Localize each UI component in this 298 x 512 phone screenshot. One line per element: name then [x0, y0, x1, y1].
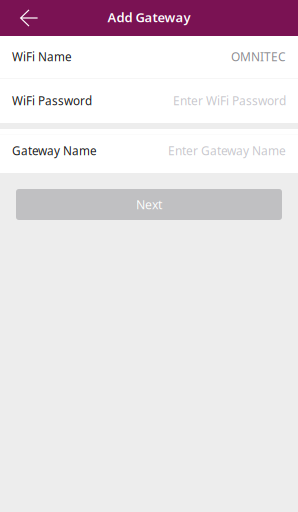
staticText: Next: [136, 196, 162, 213]
staticText: OMNITEC: [231, 49, 286, 65]
staticText: WiFi Password: [12, 93, 92, 109]
staticText: Add Gateway: [107, 8, 190, 26]
staticText: Enter Gateway Name: [168, 143, 286, 159]
button[interactable]: Next: [16, 189, 282, 220]
staticText: WiFi Name: [12, 49, 72, 65]
staticText: Gateway Name: [12, 143, 97, 159]
staticText: Enter WiFi Password: [173, 93, 286, 109]
button[interactable]: Back: [0, 0, 54, 36]
